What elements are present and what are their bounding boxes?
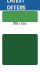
staticText: Search offers [8, 10, 32, 15]
staticText: LATEST OFFERS [6, 0, 25, 11]
staticText: Offer title [13, 22, 27, 25]
